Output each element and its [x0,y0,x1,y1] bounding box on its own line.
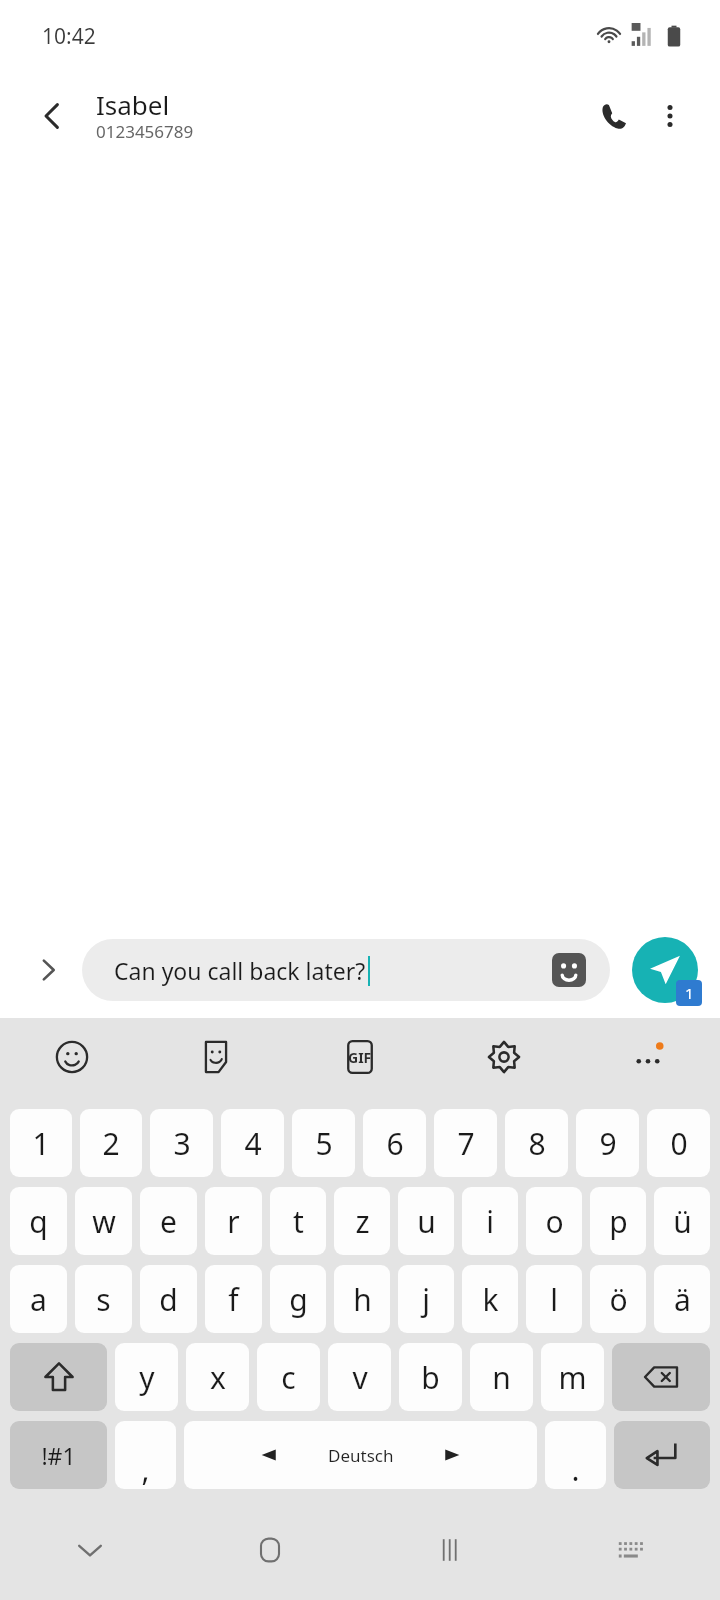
button[interactable]: Settings [432,1018,576,1096]
button[interactable]: !#1 [10,1421,107,1489]
button[interactable]: 5 [292,1109,355,1177]
staticText: x [210,1357,226,1398]
button[interactable]: ü [654,1187,710,1255]
staticText: ü [673,1201,692,1242]
button[interactable]: Shift [10,1343,107,1411]
button[interactable]: 7 [434,1109,497,1177]
staticText: e [160,1201,177,1242]
button[interactable]: t [270,1187,326,1255]
button[interactable]: i [462,1187,518,1255]
button[interactable]: Emoji [0,1018,144,1096]
staticText: 4 [244,1123,262,1164]
button[interactable]: , [115,1421,176,1489]
staticText: 10:42 [42,22,96,51]
button[interactable]: Backspace [612,1343,710,1411]
staticText: q [29,1201,48,1242]
staticText: ö [609,1279,628,1320]
button[interactable]: Deutsch [184,1421,537,1489]
staticText: j [422,1279,430,1320]
button[interactable]: f [205,1265,262,1333]
button[interactable]: b [399,1343,462,1411]
button[interactable]: o [526,1187,582,1255]
button[interactable]: j [398,1265,454,1333]
staticText: 2 [102,1123,120,1164]
staticText: Isabel [96,87,170,122]
button[interactable]: w [75,1187,132,1255]
button[interactable]: Sticker [144,1018,288,1096]
staticText: , [141,1449,150,1489]
staticText: 0 [670,1123,688,1164]
staticText: Deutsch [328,1444,394,1467]
staticText: ä [674,1279,691,1320]
staticText: o [545,1201,564,1242]
button[interactable]: Back [28,92,76,140]
staticText: l [550,1279,558,1320]
staticText: u [417,1201,436,1242]
button[interactable]: 1 [10,1109,72,1177]
button[interactable]: 9 [576,1109,639,1177]
button[interactable]: m [541,1343,604,1411]
button[interactable]: More [576,1018,720,1096]
button[interactable]: s [75,1265,132,1333]
button[interactable]: 8 [505,1109,568,1177]
staticText: p [609,1201,628,1242]
staticText: 8 [528,1123,546,1164]
button[interactable]: g [270,1265,326,1333]
staticText: 9 [599,1123,617,1164]
staticText: i [486,1201,494,1242]
button[interactable]: Expand [22,944,74,996]
button[interactable]: 3 [150,1109,213,1177]
staticText: 3 [173,1123,191,1164]
staticText: n [492,1357,511,1398]
staticText: y [139,1357,155,1398]
button[interactable]: c [257,1343,320,1411]
button[interactable]: l [526,1265,582,1333]
button[interactable]: k [462,1265,518,1333]
button[interactable]: z [334,1187,390,1255]
button[interactable]: Home [180,1500,360,1600]
button[interactable]: 6 [363,1109,426,1177]
button[interactable]: ö [590,1265,646,1333]
staticText: Can you call back later? [114,955,366,986]
button[interactable]: h [334,1265,390,1333]
staticText: b [421,1357,440,1398]
button[interactable]: e [140,1187,197,1255]
staticText: r [227,1201,240,1242]
button[interactable]: Enter [614,1421,710,1489]
staticText: g [289,1279,308,1320]
button[interactable]: More options [642,88,698,144]
button[interactable]: 4 [221,1109,284,1177]
button[interactable]: y [115,1343,178,1411]
button[interactable]: 0 [647,1109,710,1177]
button[interactable]: a [10,1265,67,1333]
button[interactable]: Can you call back later? [82,939,610,1001]
button[interactable]: Recents [360,1500,540,1600]
staticText: c [281,1357,296,1398]
button[interactable]: x [186,1343,249,1411]
button[interactable]: ä [654,1265,710,1333]
button[interactable]: 2 [80,1109,142,1177]
button[interactable]: Keyboard layout [540,1500,720,1600]
button[interactable]: d [140,1265,197,1333]
button[interactable]: u [398,1187,454,1255]
staticText: 1 [685,983,694,1003]
button[interactable]: Send [632,937,698,1003]
button[interactable]: p [590,1187,646,1255]
staticText: 7 [457,1123,475,1164]
staticText: GIF [348,1048,372,1067]
button[interactable]: . [545,1421,606,1489]
staticText: d [159,1279,178,1320]
button[interactable]: GIF [288,1018,432,1096]
button[interactable]: n [470,1343,533,1411]
button[interactable]: Hide keyboard [0,1500,180,1600]
button[interactable]: v [328,1343,391,1411]
staticText: 0123456789 [96,120,194,143]
button[interactable]: Call [586,88,642,144]
staticText: s [96,1279,111,1320]
staticText: 6 [386,1123,404,1164]
staticText: !#1 [41,1440,76,1471]
button[interactable]: Stickers [552,953,586,987]
staticText: h [353,1279,372,1320]
button[interactable]: r [205,1187,262,1255]
button[interactable]: q [10,1187,67,1255]
